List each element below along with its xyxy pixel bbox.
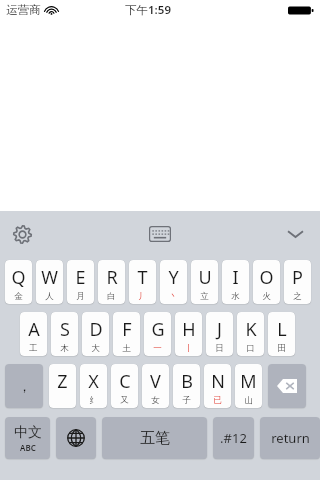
- staticText: return: [271, 429, 310, 447]
- staticText: 运营商: [6, 3, 41, 17]
- staticText: 一: [153, 343, 162, 354]
- staticText: U: [198, 265, 212, 290]
- button[interactable]: Comma: [5, 364, 43, 408]
- staticText: 丿: [138, 291, 147, 302]
- staticText: O: [259, 265, 274, 290]
- staticText: Z: [57, 369, 68, 394]
- button[interactable]: 中文: [5, 417, 50, 459]
- staticText: 子: [182, 395, 191, 406]
- staticText: B: [181, 369, 193, 394]
- staticText: 日: [215, 343, 224, 354]
- staticText: 白: [107, 291, 116, 302]
- staticText: 又: [120, 395, 129, 406]
- staticText: 山: [244, 395, 253, 406]
- button[interactable]: Keyboard layout: [140, 214, 180, 254]
- staticText: D: [89, 317, 103, 342]
- button[interactable]: Y: [160, 260, 187, 304]
- staticText: 已: [213, 395, 222, 406]
- staticText: 金: [14, 291, 23, 302]
- staticText: S: [60, 317, 70, 342]
- button[interactable]: D: [82, 312, 109, 356]
- staticText: C: [119, 369, 131, 394]
- staticText: 丨: [184, 343, 193, 354]
- staticText: A: [28, 317, 40, 342]
- button[interactable]: Backspace: [268, 364, 306, 408]
- button[interactable]: J: [206, 312, 233, 356]
- button[interactable]: A: [20, 312, 47, 356]
- staticText: 之: [293, 291, 302, 302]
- button[interactable]: Switch keyboard: [56, 417, 96, 459]
- staticText: ，: [18, 378, 31, 394]
- button[interactable]: X: [80, 364, 107, 408]
- button[interactable]: R: [98, 260, 125, 304]
- staticText: .#12: [220, 429, 247, 447]
- staticText: L: [277, 317, 287, 342]
- button[interactable]: I: [222, 260, 249, 304]
- staticText: 纟: [89, 395, 98, 406]
- staticText: M: [240, 369, 257, 394]
- staticText: E: [75, 265, 86, 290]
- button[interactable]: 五笔: [102, 417, 207, 459]
- button[interactable]: Q: [5, 260, 32, 304]
- staticText: G: [151, 317, 165, 342]
- button[interactable]: T: [129, 260, 156, 304]
- staticText: 五笔: [140, 429, 170, 448]
- button[interactable]: C: [111, 364, 138, 408]
- button[interactable]: U: [191, 260, 218, 304]
- staticText: 大: [91, 343, 100, 354]
- button[interactable]: P: [284, 260, 311, 304]
- staticText: 女: [151, 395, 160, 406]
- button[interactable]: G: [144, 312, 171, 356]
- staticText: K: [245, 317, 257, 342]
- staticText: P: [292, 265, 303, 290]
- staticText: T: [137, 265, 148, 290]
- button[interactable]: Hide keyboard: [276, 215, 314, 253]
- staticText: 立: [200, 291, 209, 302]
- button[interactable]: W: [36, 260, 63, 304]
- button[interactable]: Z: [49, 364, 76, 408]
- button[interactable]: S: [51, 312, 78, 356]
- button[interactable]: M: [235, 364, 262, 408]
- staticText: 丶: [169, 291, 178, 302]
- staticText: 田: [277, 343, 286, 354]
- button[interactable]: N: [204, 364, 231, 408]
- staticText: 木: [60, 343, 69, 354]
- staticText: J: [217, 317, 222, 342]
- staticText: Q: [11, 265, 26, 290]
- staticText: 人: [45, 291, 54, 302]
- button[interactable]: O: [253, 260, 280, 304]
- staticText: 水: [231, 291, 240, 302]
- staticText: 火: [262, 291, 271, 302]
- staticText: 工: [29, 343, 38, 354]
- staticText: F: [122, 317, 132, 342]
- button[interactable]: .#12: [213, 417, 254, 459]
- staticText: Y: [168, 265, 179, 290]
- button[interactable]: L: [268, 312, 295, 356]
- staticText: V: [150, 369, 161, 394]
- staticText: 中文: [14, 424, 42, 442]
- button[interactable]: H: [175, 312, 202, 356]
- button[interactable]: Settings: [5, 217, 39, 251]
- button[interactable]: return: [260, 417, 320, 459]
- staticText: ABC: [20, 442, 36, 453]
- staticText: 土: [122, 343, 131, 354]
- button[interactable]: E: [67, 260, 94, 304]
- staticText: R: [106, 265, 118, 290]
- staticText: X: [88, 369, 99, 394]
- button[interactable]: F: [113, 312, 140, 356]
- staticText: I: [232, 265, 239, 290]
- staticText: 口: [246, 343, 255, 354]
- staticText: 下午1:59: [125, 2, 171, 18]
- button[interactable]: K: [237, 312, 264, 356]
- staticText: W: [41, 265, 58, 290]
- staticText: 月: [76, 291, 85, 302]
- button[interactable]: V: [142, 364, 169, 408]
- staticText: N: [211, 369, 225, 394]
- button[interactable]: B: [173, 364, 200, 408]
- staticText: H: [182, 317, 196, 342]
